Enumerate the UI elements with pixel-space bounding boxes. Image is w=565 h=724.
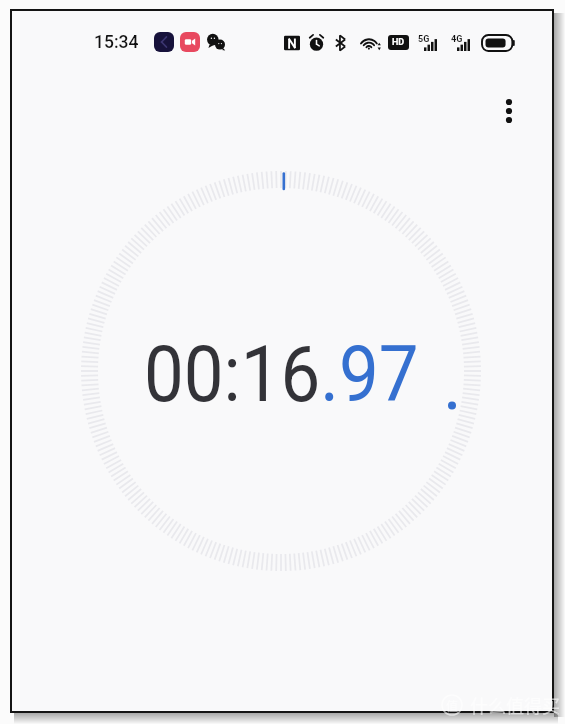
staticText: 00:16.97: [144, 330, 419, 420]
staticText: 5G: [418, 34, 430, 45]
staticText: 什么值得买: [470, 692, 560, 718]
staticText: HD: [392, 37, 405, 48]
staticText: 4G: [451, 34, 463, 45]
button[interactable]: More options: [487, 89, 531, 133]
staticText: 值: [446, 697, 459, 714]
staticText: 15:34: [94, 32, 139, 53]
